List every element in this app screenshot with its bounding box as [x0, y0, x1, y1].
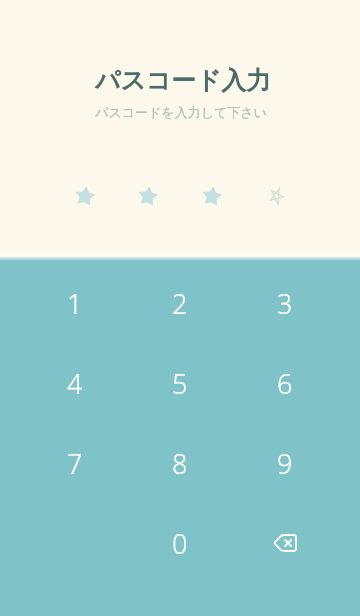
button[interactable]: 2 [132, 268, 228, 338]
staticText: 0 [172, 525, 188, 562]
staticText: 5 [172, 365, 188, 402]
button[interactable]: 4 [27, 348, 123, 418]
button[interactable]: 8 [132, 428, 228, 498]
button[interactable]: 0 [132, 508, 228, 578]
button[interactable]: Delete [237, 508, 333, 578]
button[interactable]: 6 [237, 348, 333, 418]
button[interactable]: 9 [237, 428, 333, 498]
button[interactable]: 7 [27, 428, 123, 498]
staticText: パスコードを入力して下さい [95, 104, 267, 120]
staticText: 4 [67, 365, 83, 402]
staticText: 1 [67, 285, 83, 322]
staticText: 9 [277, 445, 293, 482]
staticText: パスコード入力 [95, 65, 271, 96]
staticText: 8 [172, 445, 188, 482]
staticText: 3 [277, 285, 293, 322]
button[interactable]: 1 [27, 268, 123, 338]
staticText: 6 [277, 365, 293, 402]
button[interactable]: 5 [132, 348, 228, 418]
button[interactable]: 3 [237, 268, 333, 338]
staticText: 2 [172, 285, 188, 322]
staticText: 7 [67, 445, 83, 482]
